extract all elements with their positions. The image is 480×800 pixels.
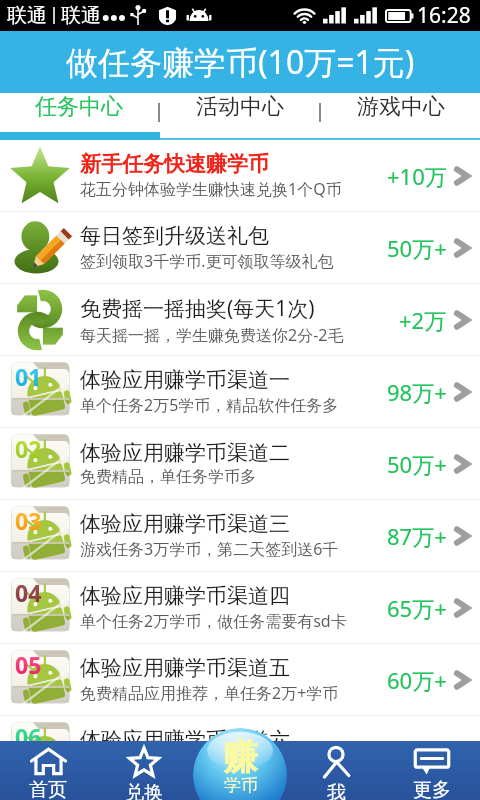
button[interactable]: 任务中心 (0, 93, 158, 121)
button[interactable]: Me (288, 741, 384, 800)
button[interactable]: Exchange (96, 741, 192, 800)
staticText: 体验应用赚学币渠道六 (80, 727, 290, 753)
staticText: 体验应用赚学币渠道五 (80, 655, 290, 681)
staticText: 赚 (223, 735, 258, 779)
button[interactable]: 03 (0, 500, 480, 571)
staticText: 65万+ (387, 593, 447, 623)
staticText: 兑换 (125, 781, 163, 800)
button[interactable]: 免费摇一摇抽奖(每天1次) (0, 284, 480, 355)
staticText: 联通 (7, 3, 47, 28)
button[interactable]: 新手任务快速赚学币 (0, 140, 480, 211)
staticText: 体验应用赚学币渠道一 (80, 367, 290, 393)
staticText: 任务中心 (35, 93, 123, 121)
staticText: 02 (15, 433, 42, 464)
button[interactable]: 每日签到升级送礼包 (0, 212, 480, 283)
staticText: 06 (15, 721, 42, 752)
staticText: 体验应用赚学币渠道二 (80, 440, 290, 466)
button[interactable]: 06 (0, 716, 480, 787)
staticText: 更多 (413, 778, 451, 800)
staticText: 04 (15, 577, 42, 608)
button[interactable]: 活动中心 (160, 93, 319, 121)
staticText: 做任务赚学币(10万=1元) (66, 40, 415, 84)
staticText: 免费精品应用推荐，单任务2万+学币 (80, 682, 339, 704)
staticText: 学币 (224, 775, 258, 796)
button[interactable]: Home (0, 741, 96, 800)
staticText: 体验应用赚学币渠道三 (80, 511, 290, 537)
staticText: 87万+ (387, 521, 447, 551)
staticText: 16:28 (417, 1, 471, 30)
staticText: 我 (327, 781, 346, 800)
staticText: 每日签到升级送礼包 (80, 223, 269, 249)
staticText: 签到领取3千学币.更可领取等级礼包 (80, 250, 334, 272)
staticText: +2万 (399, 305, 447, 335)
staticText: 03 (15, 505, 42, 536)
button[interactable]: 02 (0, 428, 480, 499)
staticText: 联通 (61, 3, 101, 28)
button[interactable]: 01 (0, 356, 480, 427)
button[interactable]: 赚学币 (193, 728, 287, 800)
staticText: 05 (15, 649, 42, 680)
staticText: 单个任务2万学币，做任务需要有sd卡 (80, 610, 347, 632)
staticText: 游戏中心 (357, 93, 445, 121)
staticText: 每天摇一摇，学生赚免费送你2分-2毛 (80, 324, 344, 346)
staticText: 新手任务快速赚学币 (80, 151, 269, 177)
staticText: 体验应用赚学币渠道四 (80, 583, 290, 609)
staticText: 免费精品，单任务学币多 (80, 467, 256, 487)
staticText: 98万+ (387, 377, 447, 407)
staticText: 花五分钟体验学生赚快速兑换1个Q币 (80, 178, 342, 200)
staticText: 活动中心 (196, 93, 284, 121)
button[interactable]: 05 (0, 644, 480, 715)
staticText: 50万+ (387, 233, 447, 263)
button[interactable]: 游戏中心 (321, 93, 480, 121)
staticText: 50万+ (387, 449, 447, 479)
staticText: 60万+ (387, 665, 447, 695)
staticText: 单个任务2万5学币，精品软件任务多 (80, 394, 339, 416)
button[interactable]: 04 (0, 572, 480, 643)
button[interactable]: More (384, 741, 480, 800)
staticText: 游戏任务3万学币，第二天签到送6千 (80, 538, 339, 560)
staticText: 01 (15, 361, 42, 392)
staticText: 免费摇一摇抽奖(每天1次) (80, 294, 315, 323)
staticText: 首页 (29, 778, 67, 800)
staticText: +10万 (387, 161, 447, 191)
